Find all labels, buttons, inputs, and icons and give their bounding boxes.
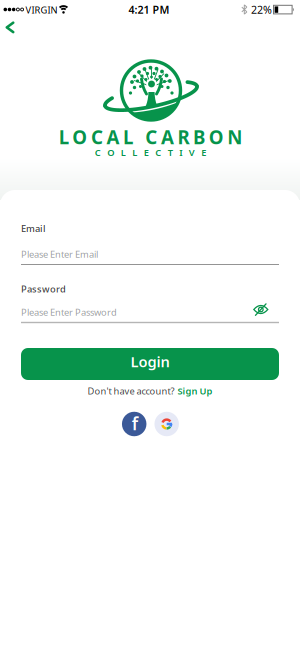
staticText: L — [59, 125, 69, 149]
staticText: 22% — [251, 2, 272, 17]
staticText: L — [123, 125, 133, 149]
staticText: Sign Up — [177, 385, 212, 397]
staticText: L — [121, 146, 126, 159]
staticText: f — [132, 412, 138, 435]
staticText: T — [168, 146, 173, 159]
staticText: I — [179, 146, 182, 159]
staticText: Don't have account? — [87, 385, 174, 397]
staticText: E — [201, 146, 206, 159]
staticText: A — [161, 125, 174, 149]
staticText: Please Enter Password — [21, 306, 117, 318]
staticText: V — [189, 146, 195, 159]
staticText: O — [107, 146, 114, 159]
button[interactable]: Please Enter Password — [21, 301, 279, 323]
button[interactable] — [0, 0, 26, 40]
staticText: Password — [21, 283, 66, 295]
staticText: O — [209, 125, 224, 149]
staticText: C — [145, 125, 157, 149]
staticText: O — [72, 125, 87, 149]
staticText: Email — [21, 222, 46, 235]
staticText: L — [132, 146, 137, 159]
staticText: Please Enter Email — [21, 248, 98, 260]
button[interactable]: Please Enter Email — [21, 243, 279, 265]
staticText: Login — [130, 352, 169, 371]
staticText: C — [91, 125, 103, 149]
button[interactable]: Login — [21, 348, 279, 380]
button[interactable]: f — [122, 412, 146, 436]
staticText: E — [144, 146, 149, 159]
button[interactable]: Sign Up — [177, 385, 212, 397]
button[interactable] — [250, 301, 272, 318]
staticText: C — [155, 146, 161, 159]
staticText: B — [193, 125, 205, 149]
staticText: R — [177, 125, 189, 149]
staticText: N — [227, 125, 242, 149]
staticText: C — [95, 146, 101, 159]
button[interactable] — [154, 412, 179, 436]
staticText: 4:21 PM — [128, 2, 169, 17]
staticText: VIRGIN — [25, 4, 57, 16]
staticText: A — [106, 125, 119, 149]
